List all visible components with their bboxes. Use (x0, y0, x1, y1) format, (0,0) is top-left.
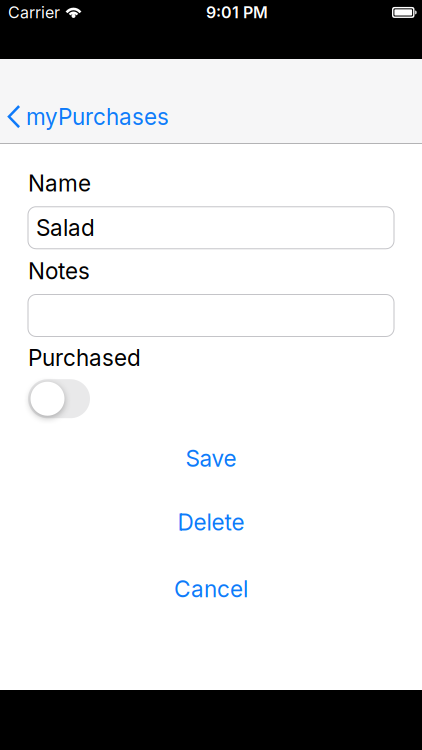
button[interactable]: Cancel (174, 576, 248, 602)
button[interactable]: Notes text field (28, 294, 394, 336)
button[interactable]: Back to myPurchases (0, 103, 169, 143)
staticText: Cancel (174, 576, 248, 602)
staticText: Name (28, 170, 91, 197)
button[interactable]: Save (185, 445, 236, 472)
staticText: Notes (28, 258, 90, 284)
button[interactable]: Purchased (28, 379, 90, 418)
button[interactable]: Delete (177, 509, 244, 536)
staticText: Delete (177, 509, 244, 536)
staticText: Purchased (28, 344, 141, 371)
staticText: myPurchases (26, 103, 169, 130)
staticText: Salad (36, 214, 95, 241)
staticText: 9:01 PM (206, 3, 268, 22)
staticText: Carrier (8, 3, 60, 22)
button[interactable]: Name text field (28, 207, 394, 249)
staticText: Save (185, 445, 236, 472)
